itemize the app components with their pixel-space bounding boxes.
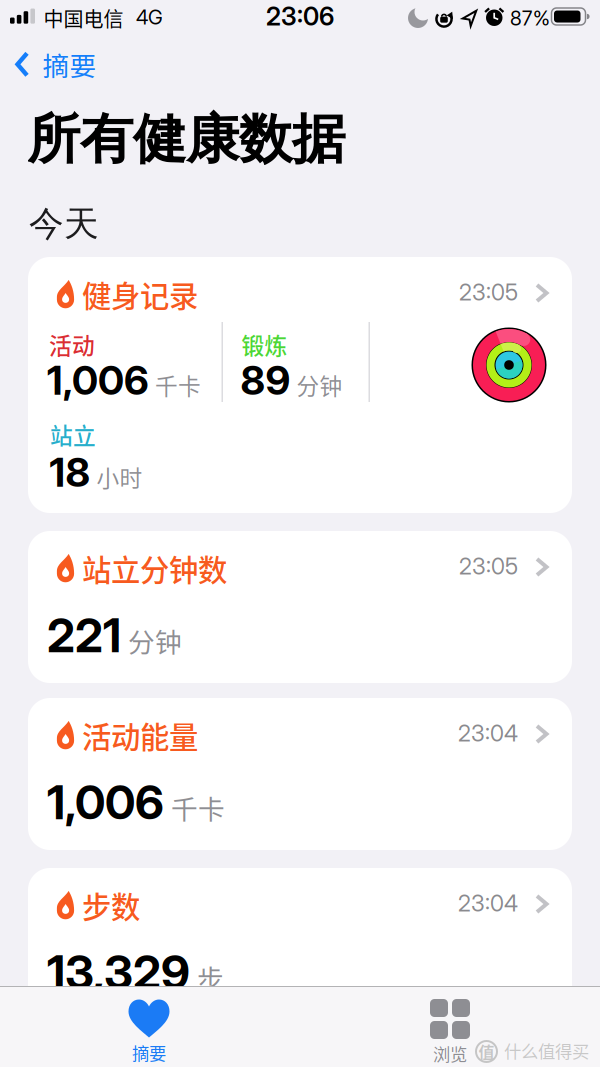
- staticText: 浏览: [433, 1041, 467, 1066]
- button[interactable]: 站立分钟数: [28, 531, 572, 683]
- staticText: 87%: [510, 6, 550, 30]
- button[interactable]: 活动能量: [28, 698, 572, 850]
- staticText: 摘要: [132, 1040, 166, 1065]
- staticText: 分钟: [296, 368, 342, 401]
- staticText: 所有健康数据: [27, 106, 345, 173]
- staticText: 18: [49, 448, 90, 496]
- staticText: 站立分钟数: [82, 547, 227, 589]
- staticText: 小时: [96, 460, 142, 493]
- staticText: 13,329: [47, 944, 190, 1000]
- staticText: 23:05: [459, 278, 518, 306]
- staticText: 中国电信: [43, 3, 123, 32]
- staticText: 锻炼: [241, 328, 287, 361]
- staticText: 健身记录: [82, 273, 198, 315]
- button[interactable]: 步数: [28, 868, 572, 1020]
- staticText: 今天: [29, 202, 99, 246]
- staticText: 摘要: [42, 45, 96, 84]
- staticText: 千卡: [171, 788, 225, 827]
- staticText: 值: [478, 1040, 494, 1063]
- staticText: 步数: [82, 884, 140, 926]
- staticText: 23:05: [459, 552, 518, 580]
- staticText: 步: [197, 958, 224, 997]
- staticText: 23:04: [458, 719, 518, 747]
- staticText: 23:04: [458, 889, 518, 917]
- staticText: 分钟: [128, 621, 182, 660]
- staticText: 23:06: [266, 1, 334, 32]
- staticText: 什么值得买: [504, 1038, 589, 1063]
- staticText: 221: [47, 607, 121, 663]
- button[interactable]: 摘要: [89, 999, 209, 1065]
- staticText: 千卡: [155, 368, 201, 401]
- button[interactable]: 浏览: [390, 999, 510, 1066]
- staticText: 活动能量: [82, 714, 198, 756]
- staticText: 1,006: [47, 356, 149, 404]
- staticText: 站立: [50, 418, 96, 451]
- button[interactable]: 健身记录: [28, 257, 572, 513]
- staticText: 活动: [49, 328, 95, 361]
- staticText: 89: [240, 356, 290, 404]
- staticText: 4G: [136, 5, 163, 29]
- staticText: 1,006: [47, 774, 164, 830]
- button[interactable]: 摘要: [14, 45, 96, 84]
